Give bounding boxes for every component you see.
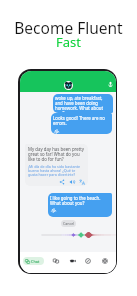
button[interactable]: woke up, ate breakfast, and have been do…: [53, 94, 113, 113]
button[interactable]: Share: [59, 179, 65, 185]
button[interactable]: Practice: [51, 256, 60, 265]
staticText: Cancel: [63, 221, 75, 226]
button[interactable]: Videos: [68, 256, 77, 265]
button[interactable]: Looks good! There are no errors.: [51, 113, 112, 134]
button[interactable]: Microphone: [107, 81, 114, 88]
staticText: Become Fluent: [14, 17, 123, 38]
staticText: woke up, ate breakfast, and have been do…: [55, 95, 111, 112]
staticText: Chat: [31, 259, 40, 264]
button[interactable]: My day day has been pretty great so far!…: [25, 144, 88, 186]
staticText: Looks good! There are no errors.: [53, 115, 110, 126]
button[interactable]: I like going to the beach. What about yo…: [48, 193, 112, 217]
staticText: My day day has been pretty great so far!…: [28, 146, 85, 162]
button[interactable]: Settings: [100, 256, 109, 265]
button[interactable]: Translate: [79, 179, 85, 185]
staticText: ¡Mi día de día ha sido bastante bueno ha…: [28, 164, 85, 177]
button[interactable]: Play audio: [69, 179, 75, 185]
button[interactable]: Chat: [23, 257, 44, 265]
button[interactable]: Cancel: [61, 220, 76, 227]
staticText: I like going to the beach. What about yo…: [50, 195, 110, 206]
staticText: Fast: [56, 33, 81, 51]
button[interactable]: Explore: [83, 256, 92, 265]
button[interactable]: Tutor avatar: [64, 81, 73, 90]
